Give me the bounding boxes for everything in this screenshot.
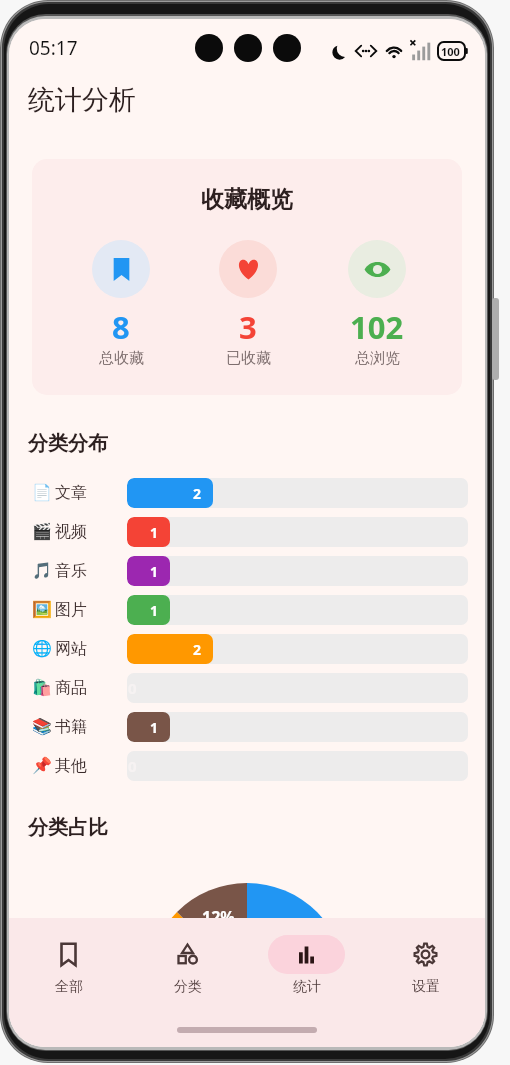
staticText: 0: [128, 756, 137, 776]
staticText: 🖼️: [32, 600, 53, 619]
button[interactable]: 🎵: [9, 551, 485, 590]
staticText: 全部: [55, 978, 83, 996]
staticText: 统计: [293, 978, 321, 996]
staticText: 网站: [55, 639, 127, 659]
staticText: 05:17: [29, 35, 78, 61]
staticText: 分类: [174, 978, 202, 996]
staticText: 2: [193, 484, 202, 503]
staticText: 书籍: [55, 717, 127, 737]
staticText: 3: [239, 306, 257, 348]
button[interactable]: 全部: [9, 918, 128, 1013]
staticText: 1: [150, 718, 159, 737]
button[interactable]: 统计: [247, 918, 366, 1013]
button[interactable]: 已收藏: [184, 240, 312, 368]
staticText: 分类占比: [28, 815, 108, 840]
button[interactable]: 🛍️: [9, 668, 485, 707]
button[interactable]: 设置: [366, 918, 485, 1013]
staticText: 商品: [55, 678, 127, 698]
button[interactable]: 📚: [9, 707, 485, 746]
staticText: 8: [112, 306, 130, 348]
staticText: 📄: [32, 483, 53, 502]
button[interactable]: 🎬: [9, 512, 485, 551]
button[interactable]: 🖼️: [9, 590, 485, 629]
staticText: 2: [193, 640, 202, 659]
staticText: 总浏览: [355, 349, 400, 368]
button[interactable]: 📄: [9, 473, 485, 512]
button[interactable]: 🌐: [9, 629, 485, 668]
staticText: 文章: [55, 483, 127, 503]
staticText: 1: [150, 523, 159, 542]
staticText: 图片: [55, 600, 127, 620]
staticText: 🌐: [32, 639, 53, 658]
button[interactable]: 总收藏: [57, 240, 185, 368]
staticText: 视频: [55, 522, 127, 542]
staticText: 已收藏: [226, 349, 271, 368]
staticText: 🎬: [32, 522, 53, 541]
staticText: 音乐: [55, 561, 127, 581]
staticText: 📌: [32, 756, 53, 775]
staticText: 🛍️: [32, 678, 53, 697]
button[interactable]: 总浏览: [313, 240, 441, 368]
staticText: 1: [150, 601, 159, 620]
button[interactable]: 📌: [9, 746, 485, 785]
staticText: 总收藏: [99, 349, 144, 368]
staticText: 设置: [412, 978, 440, 996]
staticText: 其他: [55, 756, 127, 776]
button[interactable]: 分类: [128, 918, 247, 1013]
staticText: 12%: [202, 906, 235, 928]
staticText: 🎵: [32, 561, 53, 580]
staticText: 分类分布: [28, 431, 108, 456]
staticText: 100: [441, 44, 460, 59]
staticText: 📚: [32, 717, 53, 736]
staticText: 0: [128, 678, 137, 698]
staticText: 1: [150, 562, 159, 581]
staticText: 102: [350, 306, 404, 348]
staticText: 统计分析: [28, 83, 136, 117]
staticText: 收藏概览: [201, 185, 293, 214]
